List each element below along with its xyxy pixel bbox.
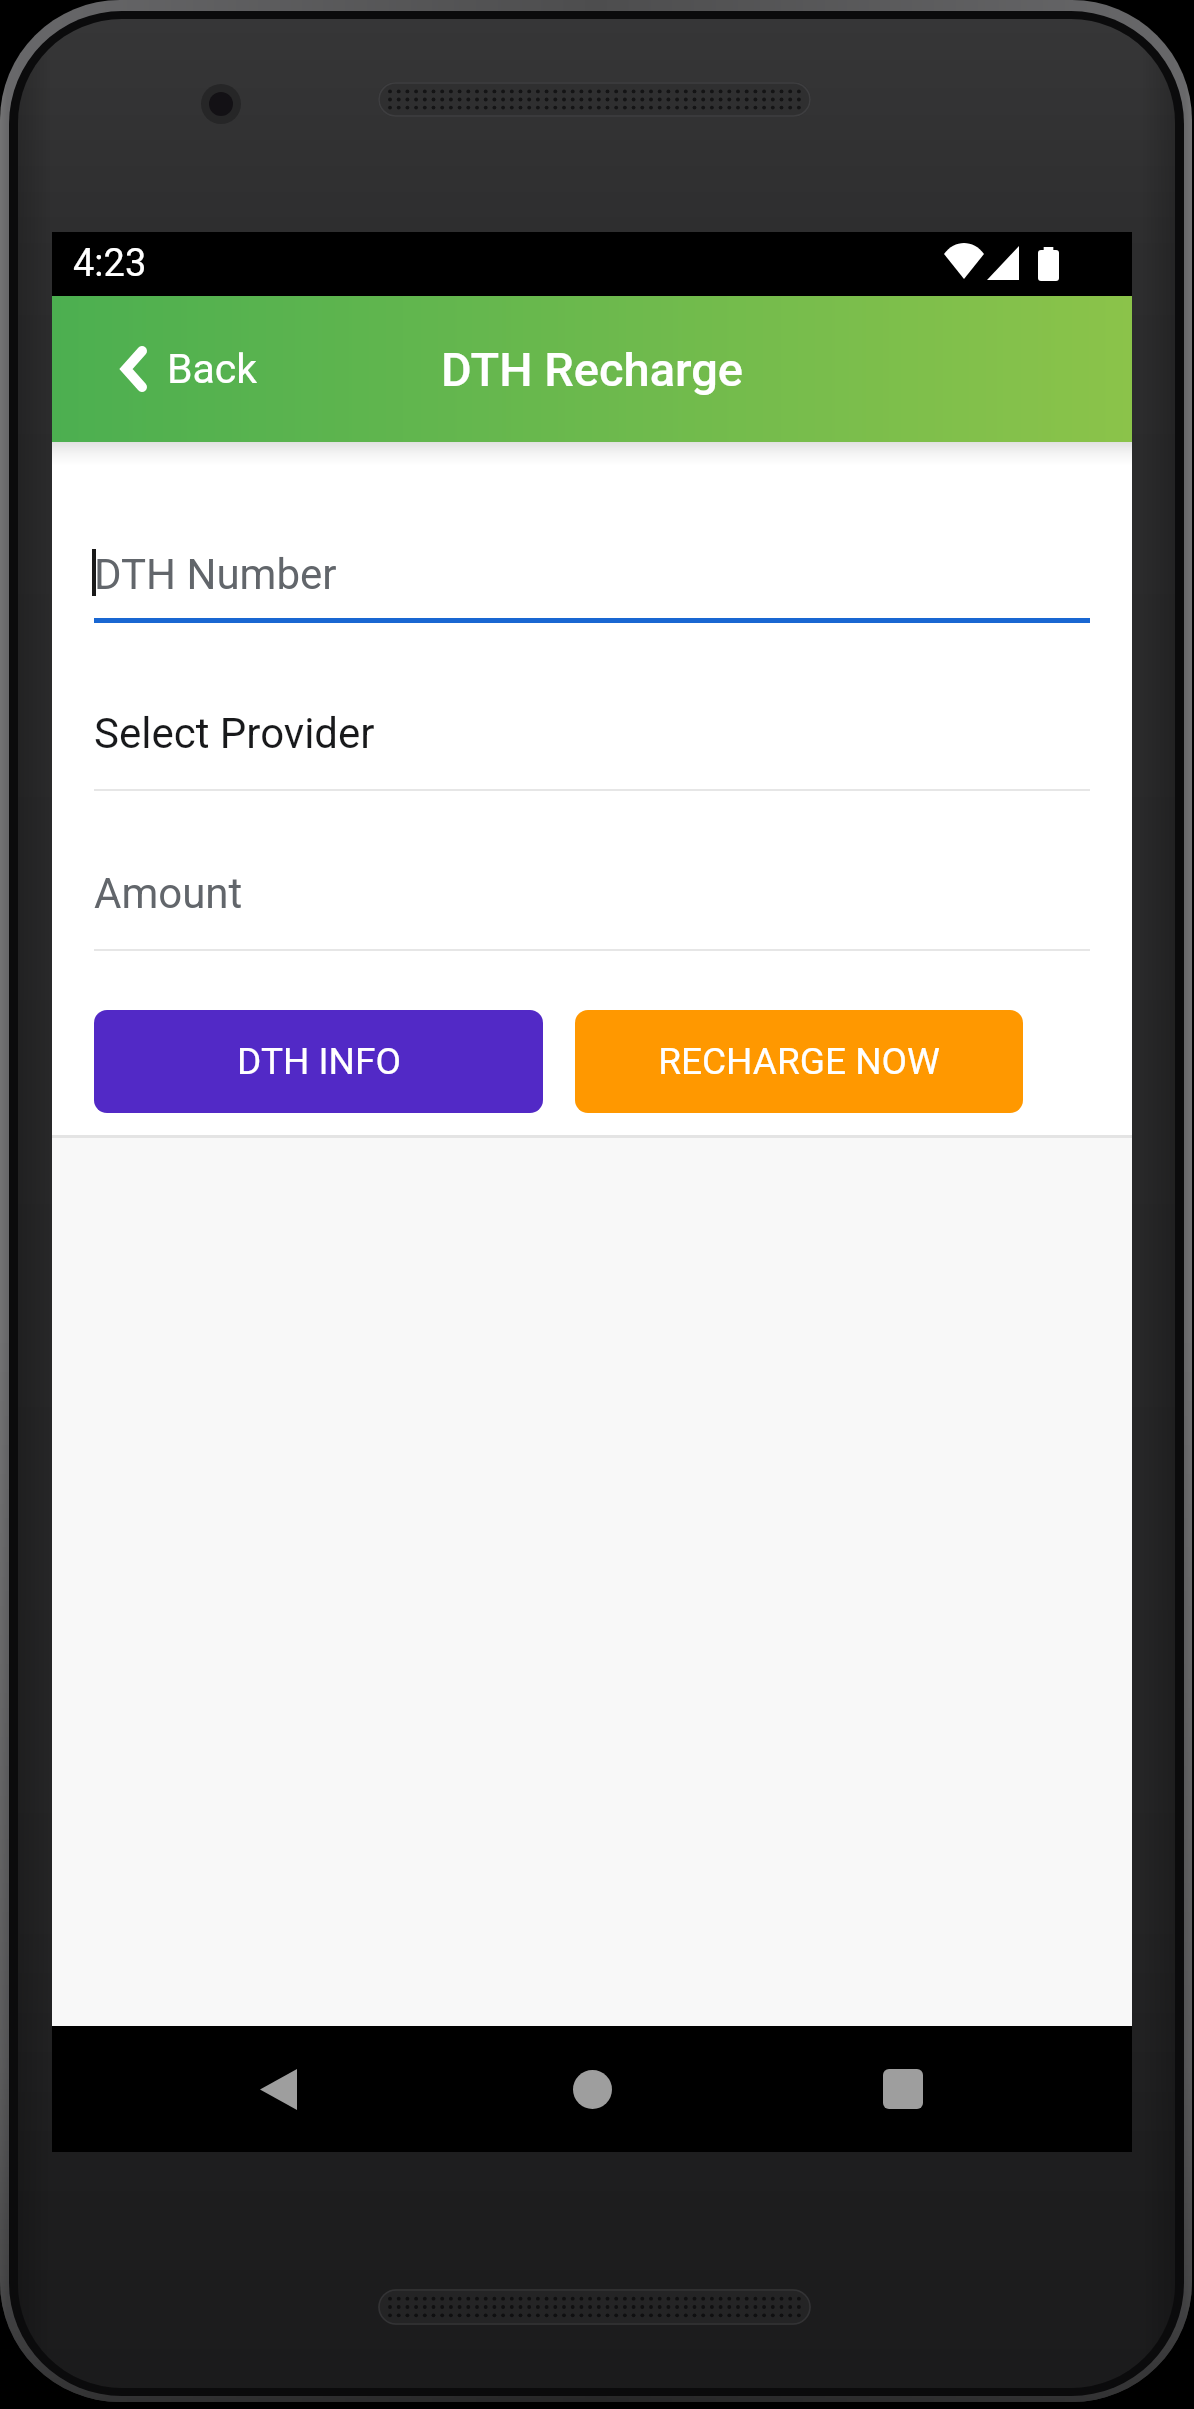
staticText: 4:23: [73, 241, 147, 286]
staticText: DTH Recharge: [441, 342, 743, 397]
button[interactable]: Back: [52, 329, 284, 409]
staticText: DTH Number: [94, 550, 337, 599]
staticText: Select Provider: [94, 709, 375, 758]
staticText: RECHARGE NOW: [658, 1040, 940, 1083]
button[interactable]: Select Provider: [52, 709, 1132, 791]
button[interactable]: Amount: [52, 869, 1132, 951]
staticText: Back: [167, 345, 258, 393]
button[interactable]: Back: [218, 2029, 338, 2149]
button[interactable]: RECHARGE NOW: [575, 1010, 1023, 1113]
staticText: DTH INFO: [237, 1040, 401, 1083]
staticText: Amount: [94, 869, 243, 918]
button[interactable]: Home: [532, 2029, 652, 2149]
button[interactable]: DTH INFO: [94, 1010, 543, 1113]
button[interactable]: Recent apps: [843, 2029, 963, 2149]
button[interactable]: DTH Number: [52, 550, 1132, 623]
